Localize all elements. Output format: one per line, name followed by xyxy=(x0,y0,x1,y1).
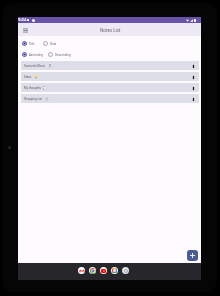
staticText: Ideas xyxy=(24,75,32,79)
button[interactable]: More options xyxy=(190,96,196,102)
button[interactable]: Photos xyxy=(111,267,118,274)
staticText: Notes List xyxy=(100,27,121,33)
button[interactable]: Add note xyxy=(187,250,198,261)
staticText: Date xyxy=(50,42,57,46)
button[interactable]: More options xyxy=(190,63,196,69)
button[interactable]: Title xyxy=(22,41,35,46)
staticText: Favourite Music xyxy=(24,64,46,68)
staticText: Shopping List xyxy=(24,97,43,101)
button[interactable]: Chrome xyxy=(89,267,96,274)
button[interactable]: More options xyxy=(190,85,196,91)
staticText: 💡 xyxy=(34,75,38,79)
button[interactable]: More options xyxy=(190,74,196,80)
staticText: 🎵 xyxy=(48,64,52,68)
staticText: Title xyxy=(29,42,35,46)
button[interactable]: YouTube xyxy=(100,267,107,274)
staticText: 🛒 xyxy=(45,97,49,101)
button[interactable]: My thoughts xyxy=(21,83,199,92)
button[interactable]: Descending xyxy=(48,52,71,57)
button[interactable]: Open navigation menu xyxy=(21,26,29,34)
staticText: 9:24 xyxy=(18,17,27,23)
staticText: Ascending xyxy=(29,53,43,57)
button[interactable]: Ideas xyxy=(21,72,199,81)
button[interactable]: Gmail xyxy=(78,267,85,274)
button[interactable]: App xyxy=(122,267,129,274)
staticText: My thoughts xyxy=(24,86,41,90)
button[interactable]: Favourite Music xyxy=(21,61,199,70)
button[interactable]: Shopping List xyxy=(21,94,199,103)
button[interactable]: Date xyxy=(43,41,57,46)
button[interactable]: Ascending xyxy=(22,52,43,57)
staticText: 💭 xyxy=(43,86,47,90)
staticText: Descending xyxy=(55,53,71,57)
